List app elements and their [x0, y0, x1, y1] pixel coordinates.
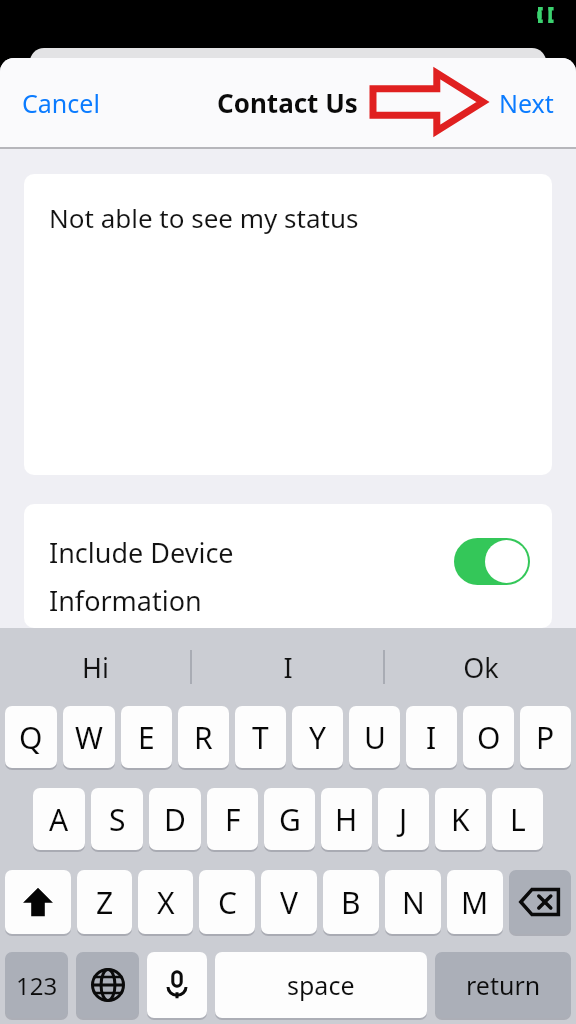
button[interactable]: return	[435, 952, 571, 1018]
staticText: R	[194, 717, 213, 758]
button[interactable]: W	[63, 706, 115, 768]
button[interactable]: Z	[77, 870, 132, 934]
button[interactable]: N	[385, 870, 441, 934]
button[interactable]: Dictate	[147, 952, 207, 1018]
staticText: Include Device Information	[49, 534, 454, 619]
button[interactable]: U	[349, 706, 400, 768]
staticText: V	[280, 882, 298, 923]
button[interactable]: V	[261, 870, 317, 934]
button[interactable]: H	[321, 788, 372, 850]
staticText: J	[399, 799, 408, 840]
staticText: F	[225, 799, 241, 840]
staticText: Y	[309, 717, 326, 758]
staticText: W	[75, 717, 103, 758]
staticText: M	[461, 882, 489, 923]
button[interactable]: R	[178, 706, 229, 768]
button[interactable]: Q	[5, 706, 57, 768]
staticText: return	[466, 968, 541, 1002]
staticText: L	[510, 799, 526, 840]
button[interactable]: Include Device Information	[24, 504, 552, 628]
button[interactable]: S	[91, 788, 143, 850]
button[interactable]: C	[199, 870, 255, 934]
staticText: Cancel	[22, 86, 100, 120]
staticText: Hi	[82, 649, 109, 686]
staticText: S	[109, 799, 126, 840]
button[interactable]: space	[215, 952, 427, 1018]
staticText: N	[402, 882, 425, 923]
button[interactable]: Cancel	[10, 78, 112, 128]
button[interactable]: Backspace	[509, 870, 571, 934]
button[interactable]: M	[447, 870, 503, 934]
staticText: P	[536, 717, 555, 758]
button[interactable]: G	[264, 788, 315, 850]
button[interactable]: K	[435, 788, 486, 850]
staticText: space	[287, 968, 355, 1002]
staticText: T	[252, 717, 269, 758]
staticText: O	[477, 717, 501, 758]
button[interactable]: E	[121, 706, 172, 768]
staticText: Q	[19, 717, 43, 758]
button[interactable]: Shift	[5, 870, 71, 934]
staticText: D	[164, 799, 186, 840]
button[interactable]: X	[138, 870, 193, 934]
button[interactable]: I	[406, 706, 457, 768]
button[interactable]: 123	[5, 952, 68, 1018]
button[interactable]: Ok	[385, 628, 576, 706]
button[interactable]: Not able to see my status	[24, 174, 552, 475]
button[interactable]: F	[207, 788, 258, 850]
staticText: Ok	[463, 649, 499, 686]
button[interactable]: J	[378, 788, 429, 850]
button[interactable]: P	[520, 706, 571, 768]
button[interactable]: Y	[292, 706, 343, 768]
button[interactable]: Next	[489, 78, 564, 128]
staticText: G	[279, 799, 301, 840]
button[interactable]: L	[492, 788, 543, 850]
staticText: C	[218, 882, 237, 923]
staticText: Contact Us	[217, 85, 358, 120]
staticText: E	[138, 717, 155, 758]
staticText: I	[426, 717, 437, 758]
staticText: Next	[499, 86, 554, 120]
button[interactable]: D	[149, 788, 201, 850]
button[interactable]: Change keyboard	[76, 952, 139, 1018]
staticText: Not able to see my status	[49, 200, 359, 235]
staticText: H	[335, 799, 358, 840]
staticText: X	[157, 882, 175, 923]
staticText: Z	[96, 882, 114, 923]
button[interactable]: T	[235, 706, 286, 768]
staticText: I	[283, 649, 293, 686]
staticText: U	[364, 717, 386, 758]
button[interactable]: Hi	[0, 628, 190, 706]
button[interactable]: A	[33, 788, 85, 850]
staticText: B	[341, 882, 361, 923]
button[interactable]: Include Device Information toggle	[454, 538, 530, 585]
button[interactable]: I	[192, 628, 383, 706]
staticText: 123	[16, 969, 58, 1002]
staticText: A	[49, 799, 69, 840]
button[interactable]: O	[463, 706, 514, 768]
staticText: K	[451, 799, 470, 840]
button[interactable]: B	[323, 870, 379, 934]
